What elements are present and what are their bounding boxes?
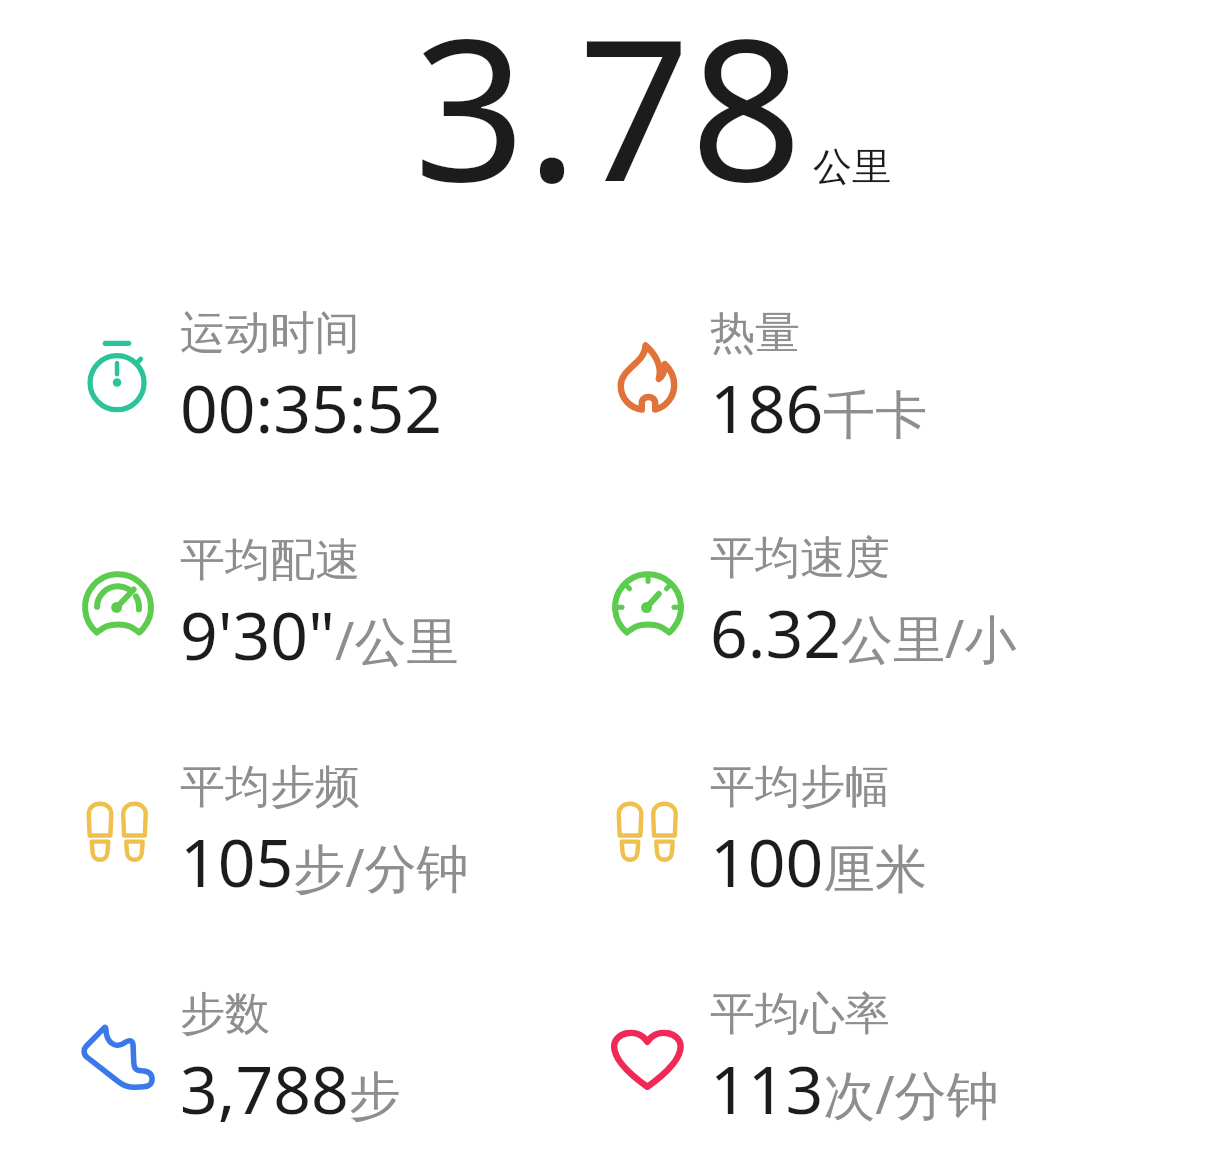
button[interactable]: Average cadence xyxy=(0,753,530,903)
button[interactable]: Average heart rate xyxy=(530,980,1060,1130)
other: Average stride xyxy=(612,793,688,869)
staticText: 步数 xyxy=(180,986,270,1043)
button[interactable]: Average stride xyxy=(530,753,1060,903)
button[interactable]: Steps xyxy=(0,980,530,1130)
button[interactable]: Calories xyxy=(530,299,1060,449)
other: Average speed xyxy=(612,566,688,642)
staticText: 105步/分钟 xyxy=(180,816,469,906)
other: Workout time xyxy=(82,339,158,415)
staticText: 113次/分钟 xyxy=(710,1043,999,1133)
staticText: 00:35:52 xyxy=(180,362,442,452)
staticText: 3,788步 xyxy=(180,1043,401,1133)
staticText: 平均步频 xyxy=(180,759,360,816)
staticText: 3.78 xyxy=(0,0,1216,238)
staticText: 平均配速 xyxy=(180,532,360,589)
staticText: 运动时间 xyxy=(180,305,360,362)
staticText: 186千卡 xyxy=(710,362,928,452)
staticText: 平均步幅 xyxy=(710,759,890,816)
other: Average cadence xyxy=(82,793,158,869)
other: Steps xyxy=(82,1020,158,1096)
button[interactable]: Workout time xyxy=(0,299,530,449)
button[interactable]: Average speed xyxy=(530,526,1060,676)
staticText: 100厘米 xyxy=(710,816,928,906)
other: Calories xyxy=(612,339,688,415)
other: Average heart rate xyxy=(612,1020,688,1096)
staticText: 平均速度 xyxy=(710,530,890,587)
staticText: 公里 xyxy=(813,142,891,191)
staticText: 6.32公里/小时 xyxy=(710,587,1060,680)
staticText: 平均心率 xyxy=(710,986,890,1043)
staticText: 热量 xyxy=(710,305,800,362)
staticText: 9'30"/公里 xyxy=(180,589,459,679)
button[interactable]: Average pace xyxy=(0,526,530,676)
other: Average pace xyxy=(82,566,158,642)
